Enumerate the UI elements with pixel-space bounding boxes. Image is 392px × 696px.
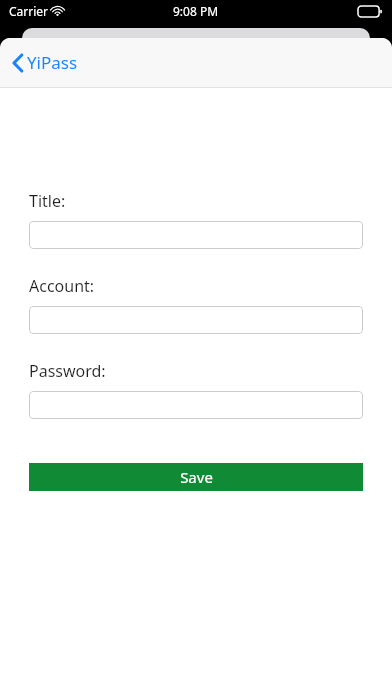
button[interactable]	[29, 391, 363, 419]
button[interactable]: Save	[29, 463, 363, 491]
button[interactable]	[29, 221, 363, 249]
staticText: Save	[180, 467, 213, 487]
staticText: Carrier	[9, 3, 49, 19]
staticText: YiPass	[27, 51, 78, 74]
staticText: Account:	[29, 275, 95, 297]
button[interactable]	[29, 306, 363, 334]
staticText: Title:	[29, 190, 66, 212]
staticText: Password:	[29, 360, 106, 382]
button[interactable]: Back to YiPass	[8, 47, 82, 78]
staticText: 9:08 PM	[173, 3, 219, 19]
